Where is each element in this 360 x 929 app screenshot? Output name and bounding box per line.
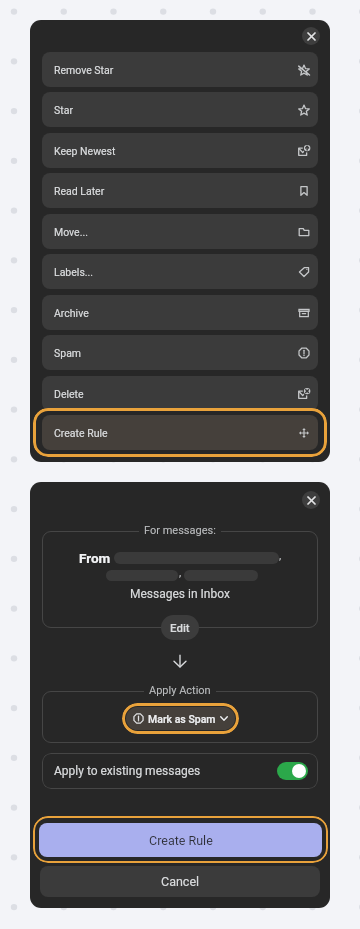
staticText: , xyxy=(279,548,282,561)
button[interactable]: Close xyxy=(302,491,320,509)
button[interactable]: Keep Newest xyxy=(42,133,318,168)
button[interactable]: Cancel xyxy=(40,866,320,897)
staticText: Mark as Spam xyxy=(148,713,216,725)
button[interactable]: Mark as Spam xyxy=(122,703,239,734)
button[interactable]: Remove Star xyxy=(42,52,318,87)
staticText: Read Later xyxy=(54,185,105,197)
staticText: Keep Newest xyxy=(54,145,116,157)
staticText: , xyxy=(179,565,182,578)
staticText: Create Rule xyxy=(54,427,108,439)
button[interactable]: Labels... xyxy=(42,254,318,289)
staticText: Star xyxy=(54,104,73,116)
button[interactable]: Create Rule xyxy=(39,823,322,857)
button[interactable]: Star xyxy=(42,92,318,127)
staticText: Delete xyxy=(54,388,84,400)
staticText: Apply to existing messages xyxy=(54,764,201,778)
staticText: Spam xyxy=(54,347,82,359)
button[interactable]: Close xyxy=(302,27,320,45)
button[interactable]: Move... xyxy=(42,214,318,249)
staticText: Create Rule xyxy=(149,833,213,848)
button[interactable]: Create Rule xyxy=(42,415,318,450)
staticText: From xyxy=(79,550,111,566)
staticText: Move... xyxy=(54,226,88,238)
button[interactable]: Read Later xyxy=(42,173,318,208)
button[interactable]: Apply to existing messages xyxy=(42,753,318,789)
staticText: For messages: xyxy=(144,524,216,537)
staticText: Labels... xyxy=(54,266,94,278)
staticText: Edit xyxy=(170,621,190,634)
button[interactable]: Edit xyxy=(161,615,199,640)
staticText: Archive xyxy=(54,307,89,319)
other: Toggle apply to existing messages xyxy=(277,762,308,780)
staticText: Messages in Inbox xyxy=(130,587,230,601)
button[interactable]: Spam xyxy=(42,335,318,370)
button[interactable]: Archive xyxy=(42,295,318,330)
button[interactable]: Delete xyxy=(42,376,318,411)
staticText: Apply Action xyxy=(149,684,211,697)
staticText: Cancel xyxy=(161,874,200,889)
staticText: Remove Star xyxy=(54,64,114,76)
